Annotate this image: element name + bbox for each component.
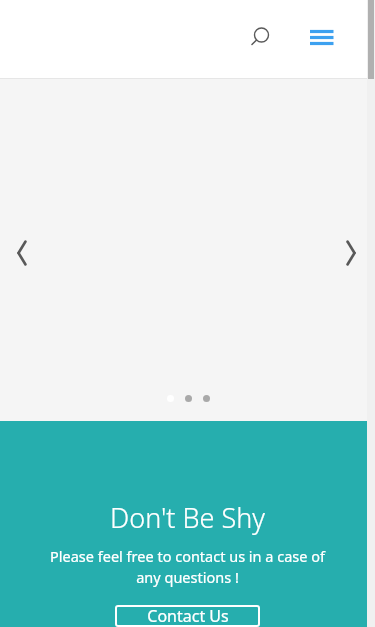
staticText: Contact Us — [147, 605, 229, 627]
button[interactable]: Previous slide — [6, 235, 42, 271]
button[interactable]: Menu — [306, 23, 338, 55]
button[interactable]: Next slide — [333, 235, 369, 271]
button[interactable]: Search — [246, 22, 278, 54]
staticText: Don't Be Shy — [0, 499, 375, 536]
button[interactable]: Contact Us — [115, 605, 260, 627]
button[interactable]: Slide 1 — [161, 389, 179, 407]
button[interactable]: Slide 2 — [179, 389, 197, 407]
button[interactable]: Slide 3 — [197, 389, 215, 407]
staticText: Please feel free to contact us in a case… — [38, 546, 337, 588]
